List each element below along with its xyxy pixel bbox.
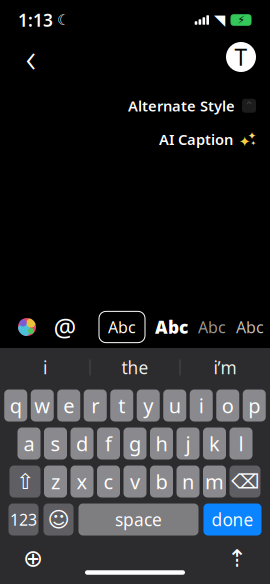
button[interactable]: Shift [9,465,40,497]
staticText: o [222,392,234,419]
button[interactable]: f [97,427,120,459]
button[interactable]: the [90,350,179,384]
staticText: b [155,468,167,495]
staticText: ✦ [238,133,250,150]
staticText: s [50,430,60,457]
button[interactable]: b [150,465,173,497]
staticText: ☺ [47,507,69,532]
button[interactable]: y [137,389,160,421]
button[interactable]: Abc [99,311,145,343]
staticText: ⚡︎ [237,14,244,26]
button[interactable]: Abc [198,316,226,338]
staticText: c [103,468,113,495]
staticText: u [169,392,181,419]
staticText: AI Caption [159,129,233,149]
button[interactable]: Mention [50,312,80,342]
button[interactable]: 123 [8,503,38,535]
button[interactable]: d [70,427,93,459]
staticText: ◥ [214,12,225,28]
staticText: i’m [213,356,236,379]
staticText: l [238,430,243,457]
button[interactable]: a [17,427,40,459]
button[interactable]: Dictation [224,545,250,571]
staticText: ⌫ [231,470,259,493]
button[interactable]: n [176,465,199,497]
staticText: T [234,42,247,72]
staticText: d [76,430,88,457]
button[interactable]: i [190,389,213,421]
staticText: y [143,392,153,419]
staticText: z [51,468,60,495]
button[interactable]: u [163,389,186,421]
staticText: space [115,508,162,531]
staticText: h [155,430,167,457]
staticText: 123 [10,509,37,530]
button[interactable]: space [78,503,198,535]
button[interactable]: Color [12,312,42,342]
staticText: Abc [236,316,264,338]
staticText: g [129,430,141,457]
button[interactable]: Back [14,40,48,74]
staticText: a [23,430,34,457]
button[interactable]: h [150,427,173,459]
staticText: done [211,508,253,531]
staticText: ⌃ [244,99,254,112]
staticText: i [199,392,204,419]
button[interactable]: Text style [226,42,256,72]
button[interactable]: v [123,465,146,497]
button[interactable]: j [176,427,199,459]
button[interactable]: i’m [180,350,269,384]
button[interactable]: Abc [155,315,188,338]
button[interactable]: Next keyboard [20,545,46,571]
staticText: x [76,468,87,495]
button[interactable]: x [70,465,93,497]
staticText: q [10,392,22,419]
button[interactable]: e [57,389,80,421]
button[interactable]: w [31,389,54,421]
staticText: r [91,392,99,419]
staticText: e [63,392,74,419]
button[interactable]: AI Caption [159,129,256,149]
staticText: v [130,468,140,495]
button[interactable]: Alternate Style [128,96,256,115]
staticText: ✦ [250,139,256,147]
staticText: Alternate Style [128,96,235,115]
staticText: Abc [108,316,136,338]
staticText: p [248,392,260,419]
staticText: t [118,392,125,419]
staticText: ☾ [57,12,70,28]
staticText: @ [53,310,76,344]
button[interactable]: q [4,389,27,421]
button[interactable]: k [203,427,226,459]
staticText: k [209,430,220,457]
button[interactable]: t [110,389,133,421]
button[interactable]: Delete [229,465,260,497]
button[interactable]: Abc [236,316,264,338]
button[interactable]: z [44,465,67,497]
staticText: m [205,468,224,495]
staticText: the [121,356,148,379]
button[interactable]: l [229,427,252,459]
staticText: 1:13 [18,8,53,31]
button[interactable]: s [44,427,67,459]
staticText: j [185,430,190,457]
staticText: ⇧ [16,469,34,494]
button[interactable]: o [216,389,239,421]
button[interactable]: done [203,503,261,535]
staticText: Abc [198,316,226,338]
staticText: ✦ [247,130,256,142]
button[interactable]: p [243,389,266,421]
button[interactable]: c [97,465,120,497]
staticText: Abc [155,315,188,338]
staticText: ⇡ [227,545,247,572]
button[interactable]: m [203,465,226,497]
staticText: w [34,392,50,419]
staticText: f [105,430,112,457]
staticText: i [43,356,47,379]
staticText: ‹ [25,30,36,83]
staticText: ⊕ [23,545,43,572]
button[interactable]: i [0,350,89,384]
button[interactable]: g [123,427,146,459]
button[interactable]: Emoji [43,503,73,535]
button[interactable]: r [84,389,107,421]
